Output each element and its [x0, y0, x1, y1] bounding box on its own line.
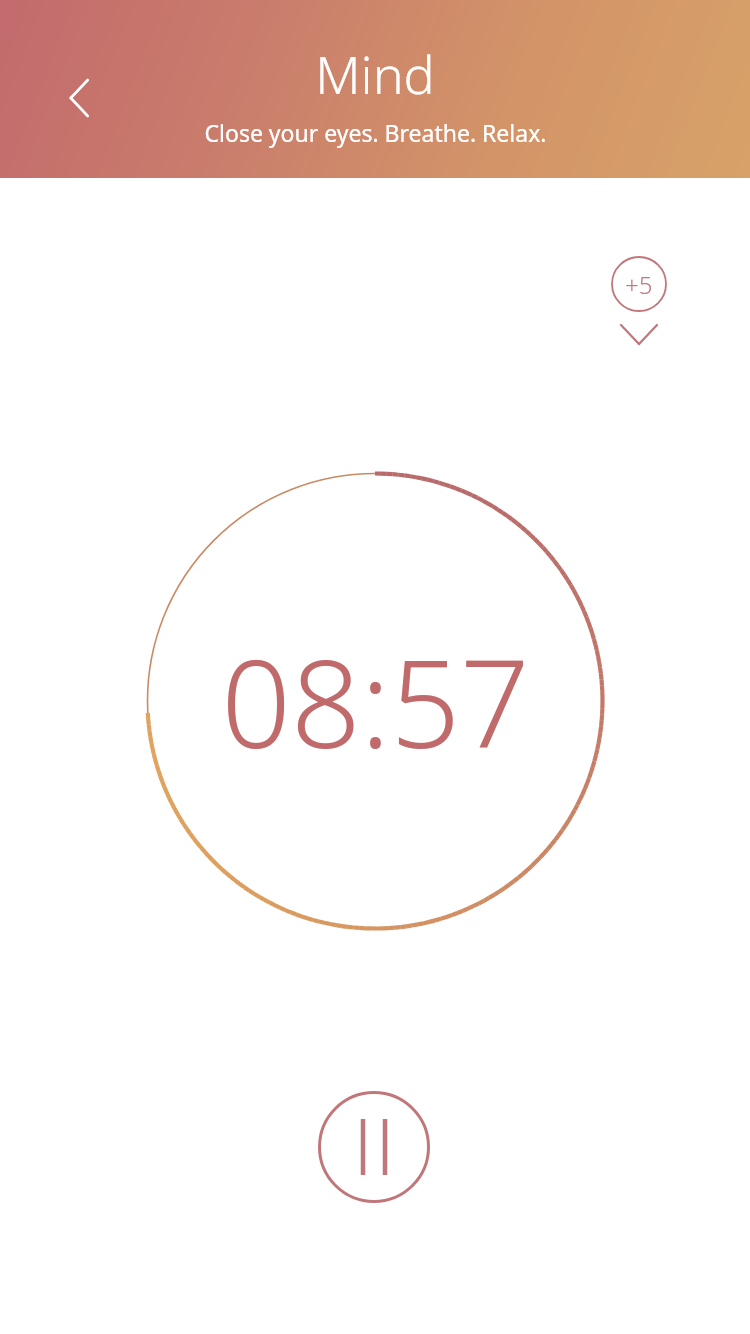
button[interactable]: 08:57	[145, 471, 605, 931]
staticText: 08:57	[221, 618, 530, 784]
button[interactable]: Pause	[317, 1090, 431, 1204]
staticText: Close your eyes. Breathe. Relax.	[204, 117, 547, 148]
button[interactable]: Add five minutes	[603, 248, 675, 356]
staticText: +5	[625, 268, 653, 301]
staticText: Mind	[315, 38, 435, 109]
button[interactable]: Back	[46, 62, 118, 134]
